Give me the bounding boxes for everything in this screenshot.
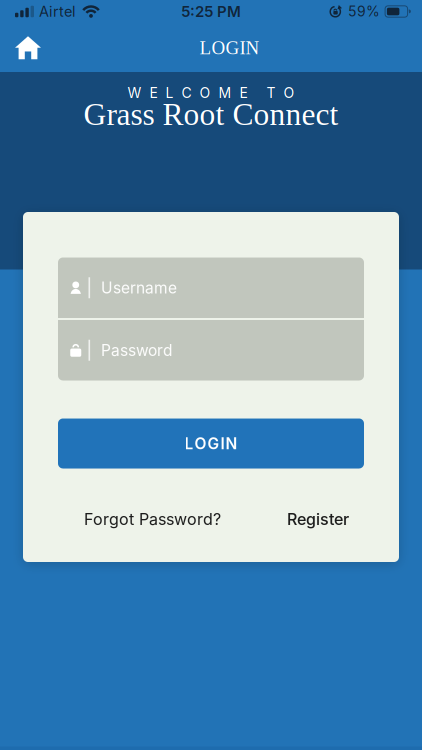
staticText: 59% [348, 3, 380, 20]
staticText: Register [287, 509, 349, 529]
staticText: L O G I N [184, 434, 237, 453]
staticText: W E L C O M E T O [127, 84, 294, 101]
staticText: 5:25 PM [181, 2, 241, 20]
button[interactable] [0, 36, 41, 59]
button[interactable]: Username [58, 257, 364, 318]
staticText: Airtel [39, 3, 76, 20]
button[interactable]: Password [58, 320, 364, 380]
staticText: LOGIN [199, 37, 259, 58]
staticText: Username [101, 278, 177, 297]
staticText: Forgot Password? [84, 509, 221, 529]
button[interactable]: Register [287, 509, 349, 529]
button[interactable]: L O G I N [58, 418, 364, 468]
button[interactable]: Forgot Password? [84, 509, 221, 529]
staticText: Grass Root Connect [83, 97, 338, 132]
staticText: Password [101, 341, 172, 360]
